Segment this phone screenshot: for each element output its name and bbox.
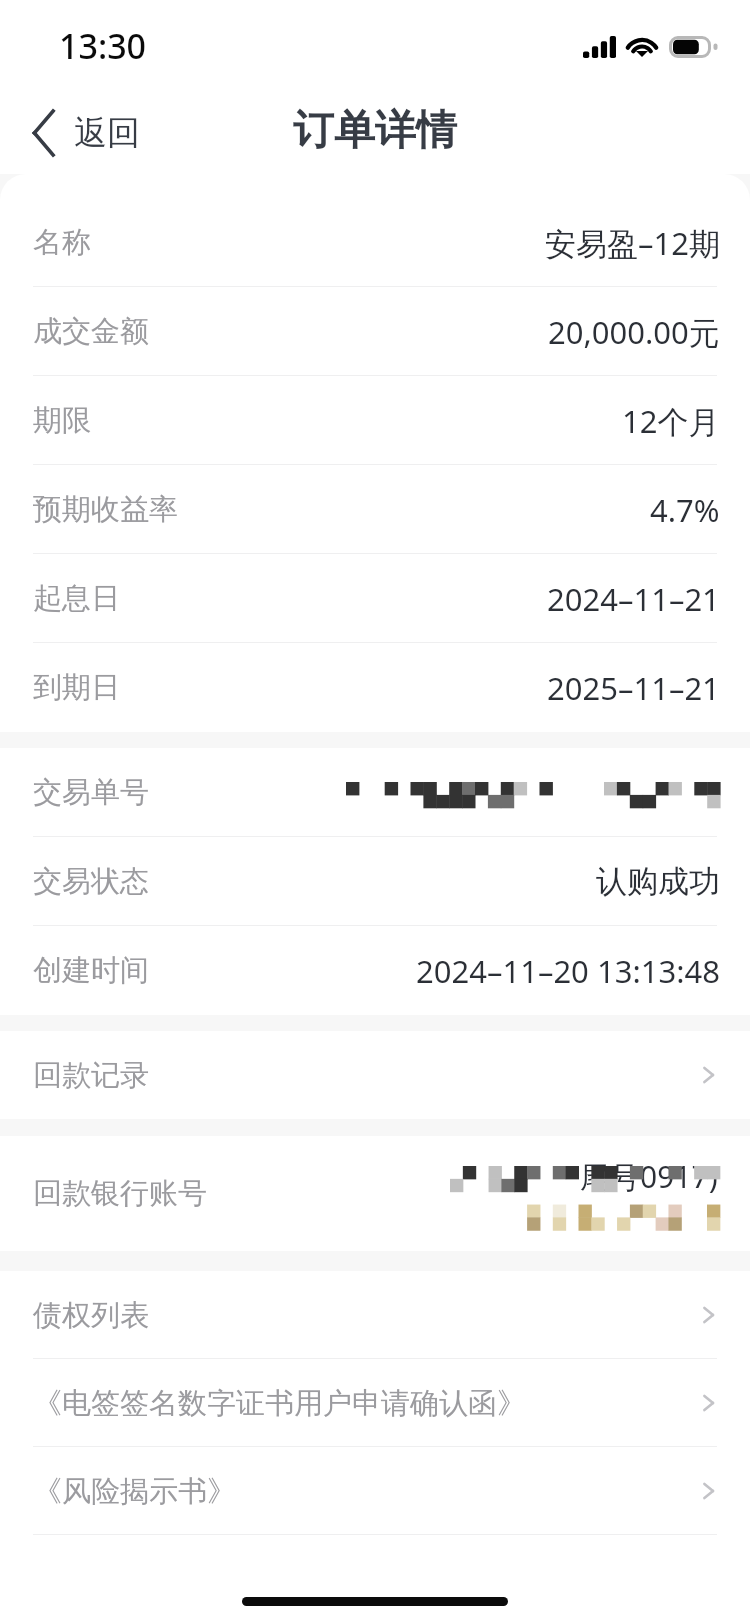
staticText: 安易盈–12期 (545, 222, 720, 264)
staticText: 创建时间 (33, 952, 149, 989)
staticText: 《风险揭示书》 (33, 1473, 236, 1510)
button[interactable]: 返回 (0, 92, 160, 174)
button[interactable]: 创建时间 (0, 926, 750, 1015)
staticText: 成交金额 (33, 313, 149, 350)
other: 打开 (703, 1482, 717, 1500)
other: 返回 (32, 110, 56, 156)
button[interactable]: 《风险揭示书》 (0, 1447, 750, 1535)
staticText: 债权列表 (33, 1297, 149, 1334)
button[interactable]: 债权列表 (0, 1271, 750, 1359)
staticText: 订单详情 (293, 105, 457, 157)
staticText: 12个月 (622, 400, 720, 442)
staticText: 起息日 (33, 580, 120, 617)
other: 打开 (703, 1306, 717, 1324)
other: 打开 (703, 1066, 717, 1084)
staticText: 13:30 (59, 23, 147, 69)
staticText: 2025–11–21 (547, 667, 720, 709)
button[interactable]: 回款银行账号 (0, 1136, 750, 1251)
staticText: 回款记录 (33, 1057, 149, 1094)
staticText: 回款银行账号 (33, 1175, 207, 1212)
staticText: 2024–11–21 (547, 578, 720, 620)
button[interactable]: 交易单号 (0, 748, 750, 837)
staticText: 20,000.00元 (548, 311, 720, 353)
other: 打开 (703, 1394, 717, 1412)
button[interactable]: 预期收益率 (0, 465, 750, 554)
staticText: 返回 (74, 112, 140, 154)
button[interactable]: 名称 (0, 198, 750, 287)
staticText: 期限 (33, 402, 91, 439)
button[interactable]: 起息日 (0, 554, 750, 643)
staticText: 到期日 (33, 669, 120, 706)
staticText: 尾号0917) (580, 1156, 718, 1197)
staticText: 认购成功 (596, 862, 720, 901)
button[interactable]: 《电签签名数字证书用户申请确认函》 (0, 1359, 750, 1447)
staticText: 交易状态 (33, 863, 149, 900)
staticText: 4.7% (650, 489, 720, 531)
button[interactable]: 期限 (0, 376, 750, 465)
staticText: 交易单号 (33, 774, 149, 811)
staticText: 《电签签名数字证书用户申请确认函》 (33, 1385, 526, 1422)
button[interactable]: 交易状态 (0, 837, 750, 926)
staticText: 2024–11–20 13:13:48 (416, 950, 720, 992)
button[interactable]: 到期日 (0, 643, 750, 732)
button[interactable]: 回款记录 (0, 1031, 750, 1119)
staticText: 名称 (33, 224, 91, 261)
staticText: 预期收益率 (33, 491, 178, 528)
button[interactable]: 成交金额 (0, 287, 750, 376)
